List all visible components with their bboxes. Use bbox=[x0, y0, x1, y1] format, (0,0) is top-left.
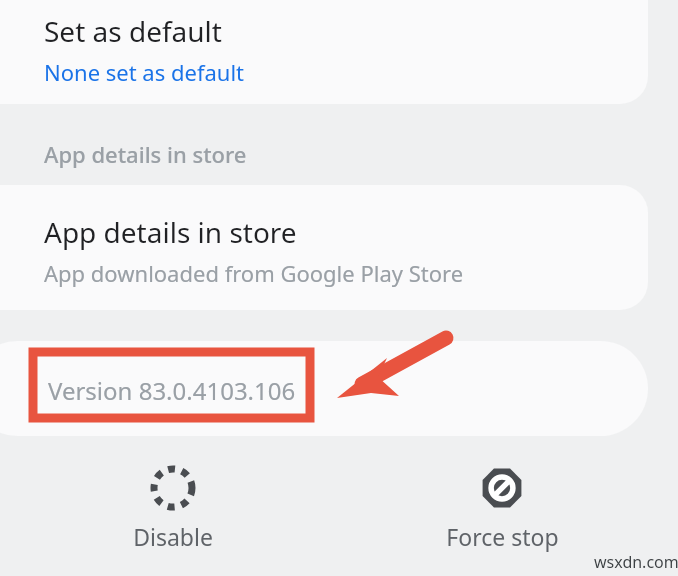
button[interactable]: Disable bbox=[113, 466, 233, 552]
staticText: Set as default bbox=[44, 12, 222, 50]
staticText: App details in store bbox=[44, 213, 297, 251]
staticText: Force stop bbox=[446, 521, 559, 552]
staticText: App downloaded from Google Play Store bbox=[44, 258, 464, 288]
button[interactable] bbox=[0, 185, 648, 310]
staticText: None set as default bbox=[44, 57, 245, 87]
staticText: Disable bbox=[133, 521, 213, 552]
button[interactable] bbox=[0, 0, 648, 104]
other: Force stop bbox=[480, 466, 524, 510]
staticText: Version 83.0.4103.106 bbox=[48, 374, 296, 407]
other: Disable bbox=[151, 466, 195, 510]
staticText: App details in store bbox=[44, 139, 247, 169]
button[interactable] bbox=[0, 341, 648, 436]
button[interactable]: Force stop bbox=[432, 466, 572, 552]
staticText: wsxdn.com bbox=[594, 551, 678, 573]
